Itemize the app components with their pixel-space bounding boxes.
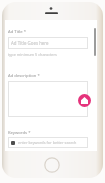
staticText: type minimum 5 characters (8, 52, 57, 57)
staticText: Keywords * (8, 130, 31, 136)
button[interactable]: Add photo (78, 94, 91, 107)
button[interactable] (8, 81, 88, 117)
staticText: enter keywords for better search (18, 140, 77, 145)
staticText: Ad Title Goes here (11, 40, 49, 46)
button[interactable]: enter keywords for better search (8, 137, 88, 148)
staticText: Ad Title * (8, 29, 27, 35)
staticText: Ad description * (8, 73, 40, 79)
button[interactable]: Ad Title Goes here (8, 37, 88, 49)
